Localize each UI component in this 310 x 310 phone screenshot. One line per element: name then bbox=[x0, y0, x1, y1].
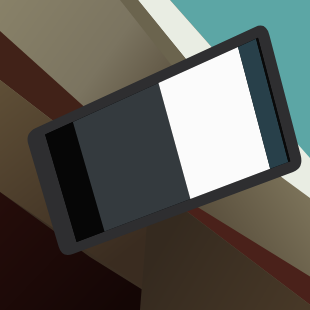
button[interactable]: Screenshot bbox=[0, 0, 310, 310]
